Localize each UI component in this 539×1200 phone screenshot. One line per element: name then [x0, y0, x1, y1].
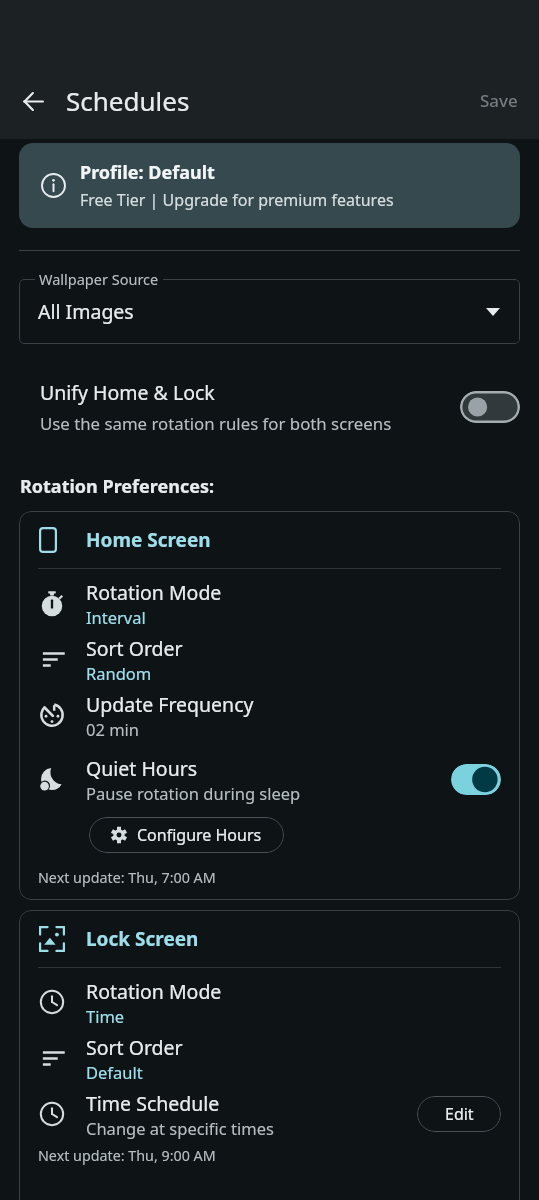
button[interactable]: Time Schedule [19, 1086, 520, 1142]
button[interactable]: Quiet Hours [19, 751, 520, 807]
button[interactable]: Update Frequency [19, 687, 520, 743]
staticText: Pause rotation during sleep [86, 782, 301, 804]
staticText: Change at specific times [86, 1117, 274, 1139]
staticText: All Images [38, 298, 134, 325]
staticText: Configure Hours [137, 824, 262, 846]
staticText: Sort Order [86, 635, 183, 662]
staticText: Update Frequency [86, 691, 254, 718]
button[interactable]: All Images [19, 279, 520, 344]
button[interactable]: Unify home and lock, off [460, 391, 520, 423]
button[interactable]: Profile: Default [19, 143, 520, 228]
staticText: Unify Home & Lock [40, 379, 215, 406]
button[interactable]: Back [9, 77, 57, 125]
button[interactable]: Save [459, 79, 539, 122]
staticText: Time Schedule [86, 1090, 220, 1117]
button[interactable]: Configure Hours [89, 817, 284, 853]
staticText: Edit [445, 1103, 474, 1125]
button[interactable]: Home Screen [19, 511, 520, 568]
staticText: Time [86, 1005, 125, 1027]
button[interactable]: Unify Home & Lock [0, 372, 539, 442]
staticText: Use the same rotation rules for both scr… [40, 412, 392, 435]
staticText: Rotation Preferences: [20, 474, 215, 499]
button[interactable]: Quiet hours, on [451, 764, 501, 795]
button[interactable]: Rotation Mode [19, 575, 520, 631]
staticText: Rotation Mode [86, 579, 222, 606]
staticText: Lock Screen [86, 926, 199, 952]
staticText: Default [86, 1061, 143, 1083]
staticText: Schedules [66, 83, 190, 118]
staticText: Sort Order [86, 1034, 183, 1061]
staticText: 02 min [86, 718, 140, 740]
staticText: Rotation Mode [86, 978, 222, 1005]
staticText: Next update: Thu, 9:00 AM [38, 1146, 216, 1165]
staticText: Free Tier | Upgrade for premium features [80, 189, 394, 211]
staticText: Interval [86, 606, 146, 628]
button[interactable]: Sort Order [19, 631, 520, 687]
button[interactable]: Rotation Mode [19, 974, 520, 1030]
other: Open wallpaper source menu [486, 308, 500, 316]
staticText: Quiet Hours [86, 755, 198, 782]
staticText: Home Screen [86, 527, 211, 553]
staticText: Profile: Default [80, 160, 215, 185]
staticText: Next update: Thu, 7:00 AM [38, 868, 216, 887]
button[interactable]: Lock Screen [19, 910, 520, 967]
button[interactable]: Edit [417, 1096, 501, 1132]
staticText: Save [480, 89, 518, 112]
button[interactable]: Sort Order [19, 1030, 520, 1086]
staticText: Random [86, 662, 152, 684]
staticText: Wallpaper Source [39, 269, 159, 289]
